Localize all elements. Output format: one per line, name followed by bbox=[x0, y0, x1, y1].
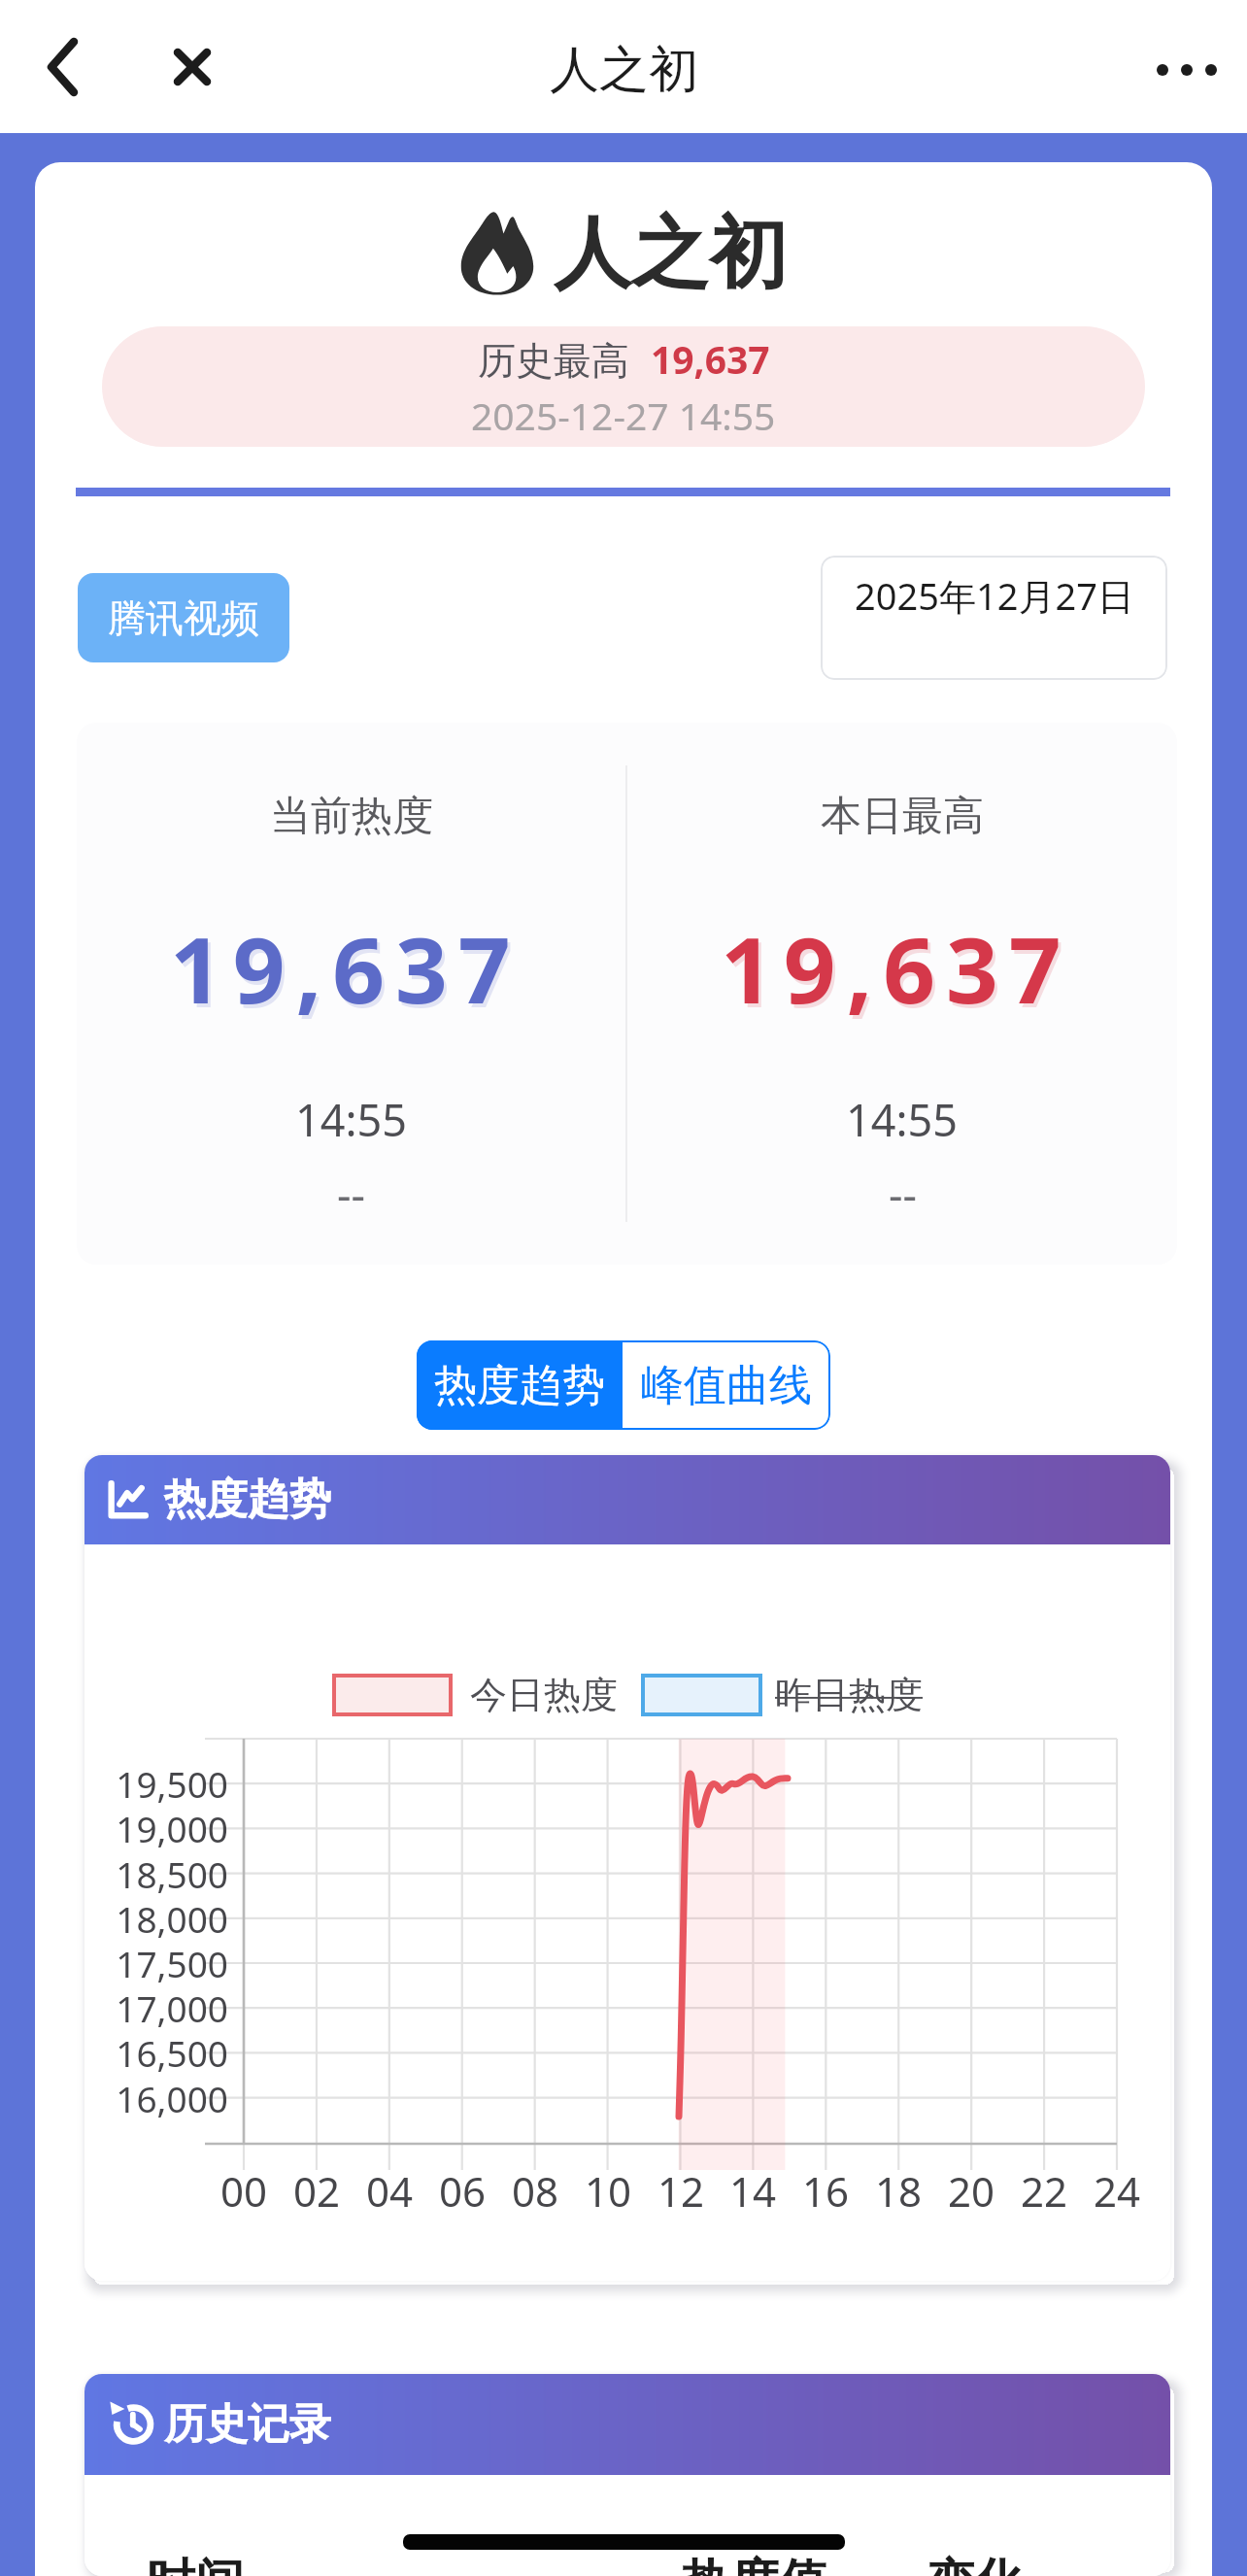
staticText: 12 bbox=[637, 2163, 725, 2219]
staticText: 18 bbox=[855, 2163, 942, 2219]
staticText: 16,500 bbox=[98, 2028, 228, 2077]
staticText: 19,000 bbox=[98, 1804, 228, 1852]
staticText: 00 bbox=[200, 2163, 287, 2219]
staticText: 热度值 bbox=[682, 2552, 827, 2576]
button[interactable]: 热度趋势 bbox=[417, 1340, 623, 1430]
staticText: 14 bbox=[709, 2163, 796, 2219]
button[interactable]: More options bbox=[1140, 20, 1233, 114]
staticText: -- bbox=[337, 1164, 365, 1223]
staticText: 16 bbox=[782, 2163, 869, 2219]
staticText: 14:55 bbox=[295, 1090, 408, 1149]
button[interactable]: Back bbox=[16, 20, 109, 114]
staticText: 19,637 bbox=[724, 910, 1075, 1034]
staticText: 历史最高 bbox=[478, 337, 629, 385]
button[interactable]: 2025年12月27日 bbox=[821, 556, 1167, 680]
staticText: 人之初 bbox=[550, 39, 698, 101]
staticText: 10 bbox=[564, 2163, 652, 2219]
staticText: 峰值曲线 bbox=[641, 1359, 812, 1412]
staticText: 16,000 bbox=[98, 2074, 228, 2122]
staticText: 18,000 bbox=[98, 1894, 228, 1943]
button[interactable]: 峰值曲线 bbox=[623, 1340, 830, 1430]
staticText: -- bbox=[889, 1164, 917, 1223]
staticText: 变化 bbox=[926, 2552, 1023, 2576]
staticText: 热度趋势 bbox=[434, 1359, 605, 1412]
staticText: 18,500 bbox=[98, 1849, 228, 1898]
staticText: 19,637 bbox=[170, 906, 522, 1031]
staticText: 08 bbox=[491, 2163, 579, 2219]
staticText: 今日热度 bbox=[470, 1672, 618, 1718]
staticText: 19,637 bbox=[173, 910, 524, 1034]
staticText: 19,637 bbox=[651, 333, 770, 385]
staticText: 时间 bbox=[147, 2552, 244, 2576]
staticText: 2025年12月27日 bbox=[855, 570, 1134, 621]
staticText: 24 bbox=[1073, 2163, 1161, 2219]
staticText: 19,500 bbox=[98, 1759, 228, 1808]
button[interactable]: 腾讯视频 bbox=[78, 573, 289, 662]
staticText: 20 bbox=[927, 2163, 1015, 2219]
staticText: 04 bbox=[346, 2163, 433, 2219]
button[interactable]: Close bbox=[146, 20, 239, 114]
staticText: 热度趋势 bbox=[164, 1474, 331, 1526]
staticText: 17,000 bbox=[98, 1983, 228, 2032]
staticText: 02 bbox=[273, 2163, 360, 2219]
staticText: 14:55 bbox=[846, 1090, 959, 1149]
staticText: 19,637 bbox=[721, 906, 1072, 1031]
staticText: 17,500 bbox=[98, 1939, 228, 1987]
staticText: 本日最高 bbox=[821, 791, 984, 842]
staticText: 06 bbox=[419, 2163, 506, 2219]
staticText: 腾讯视频 bbox=[108, 594, 259, 642]
staticText: 2025-12-27 14:55 bbox=[471, 390, 776, 441]
staticText: 人之初 bbox=[554, 205, 787, 294]
staticText: 当前热度 bbox=[270, 791, 433, 842]
staticText: 22 bbox=[1000, 2163, 1088, 2219]
staticText: 历史记录 bbox=[164, 2398, 331, 2451]
staticText: 昨日热度 bbox=[775, 1672, 923, 1718]
